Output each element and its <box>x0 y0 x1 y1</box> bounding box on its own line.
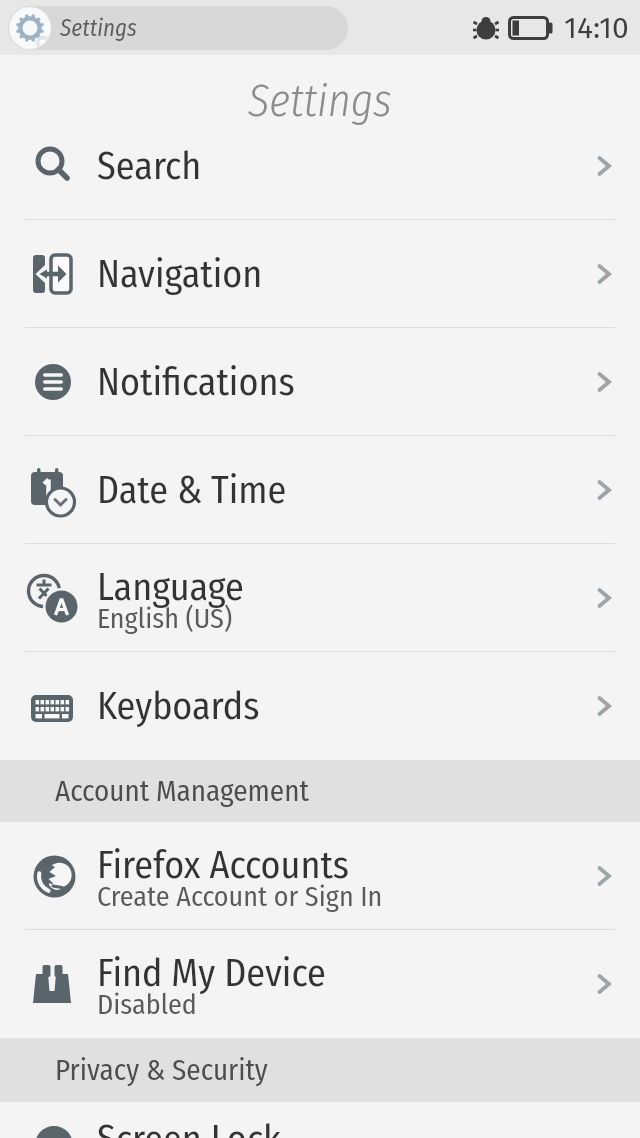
staticText: Find My Device <box>97 950 326 996</box>
staticText: Settings <box>248 75 392 128</box>
staticText: Language <box>97 564 244 610</box>
button[interactable]: Search <box>0 112 640 220</box>
staticText: 14:10 <box>564 10 629 46</box>
staticText: Date & Time <box>97 467 287 513</box>
button[interactable]: Notifications <box>0 328 640 436</box>
staticText: Keyboards <box>97 683 260 729</box>
staticText: Screen Lock <box>97 1116 281 1138</box>
staticText: Settings <box>60 14 137 42</box>
staticText: Search <box>97 143 202 189</box>
staticText: English (US) <box>97 602 233 636</box>
button[interactable]: Language <box>0 544 640 652</box>
button[interactable]: Keyboards <box>0 652 640 760</box>
staticText: Create Account or Sign In <box>97 880 383 914</box>
button[interactable]: Find My Device <box>0 930 640 1038</box>
staticText: Firefox Accounts <box>97 842 350 888</box>
button[interactable]: Settings <box>8 6 348 50</box>
button[interactable]: Date & Time <box>0 436 640 544</box>
staticText: Privacy & Security <box>55 1053 268 1088</box>
button[interactable]: Firefox Accounts <box>0 822 640 930</box>
staticText: Account Management <box>55 774 309 809</box>
button[interactable]: Navigation <box>0 220 640 328</box>
staticText: Navigation <box>97 251 263 297</box>
staticText: Disabled <box>97 988 197 1022</box>
button[interactable]: Screen Lock <box>0 1102 640 1138</box>
staticText: Notifications <box>97 359 295 405</box>
